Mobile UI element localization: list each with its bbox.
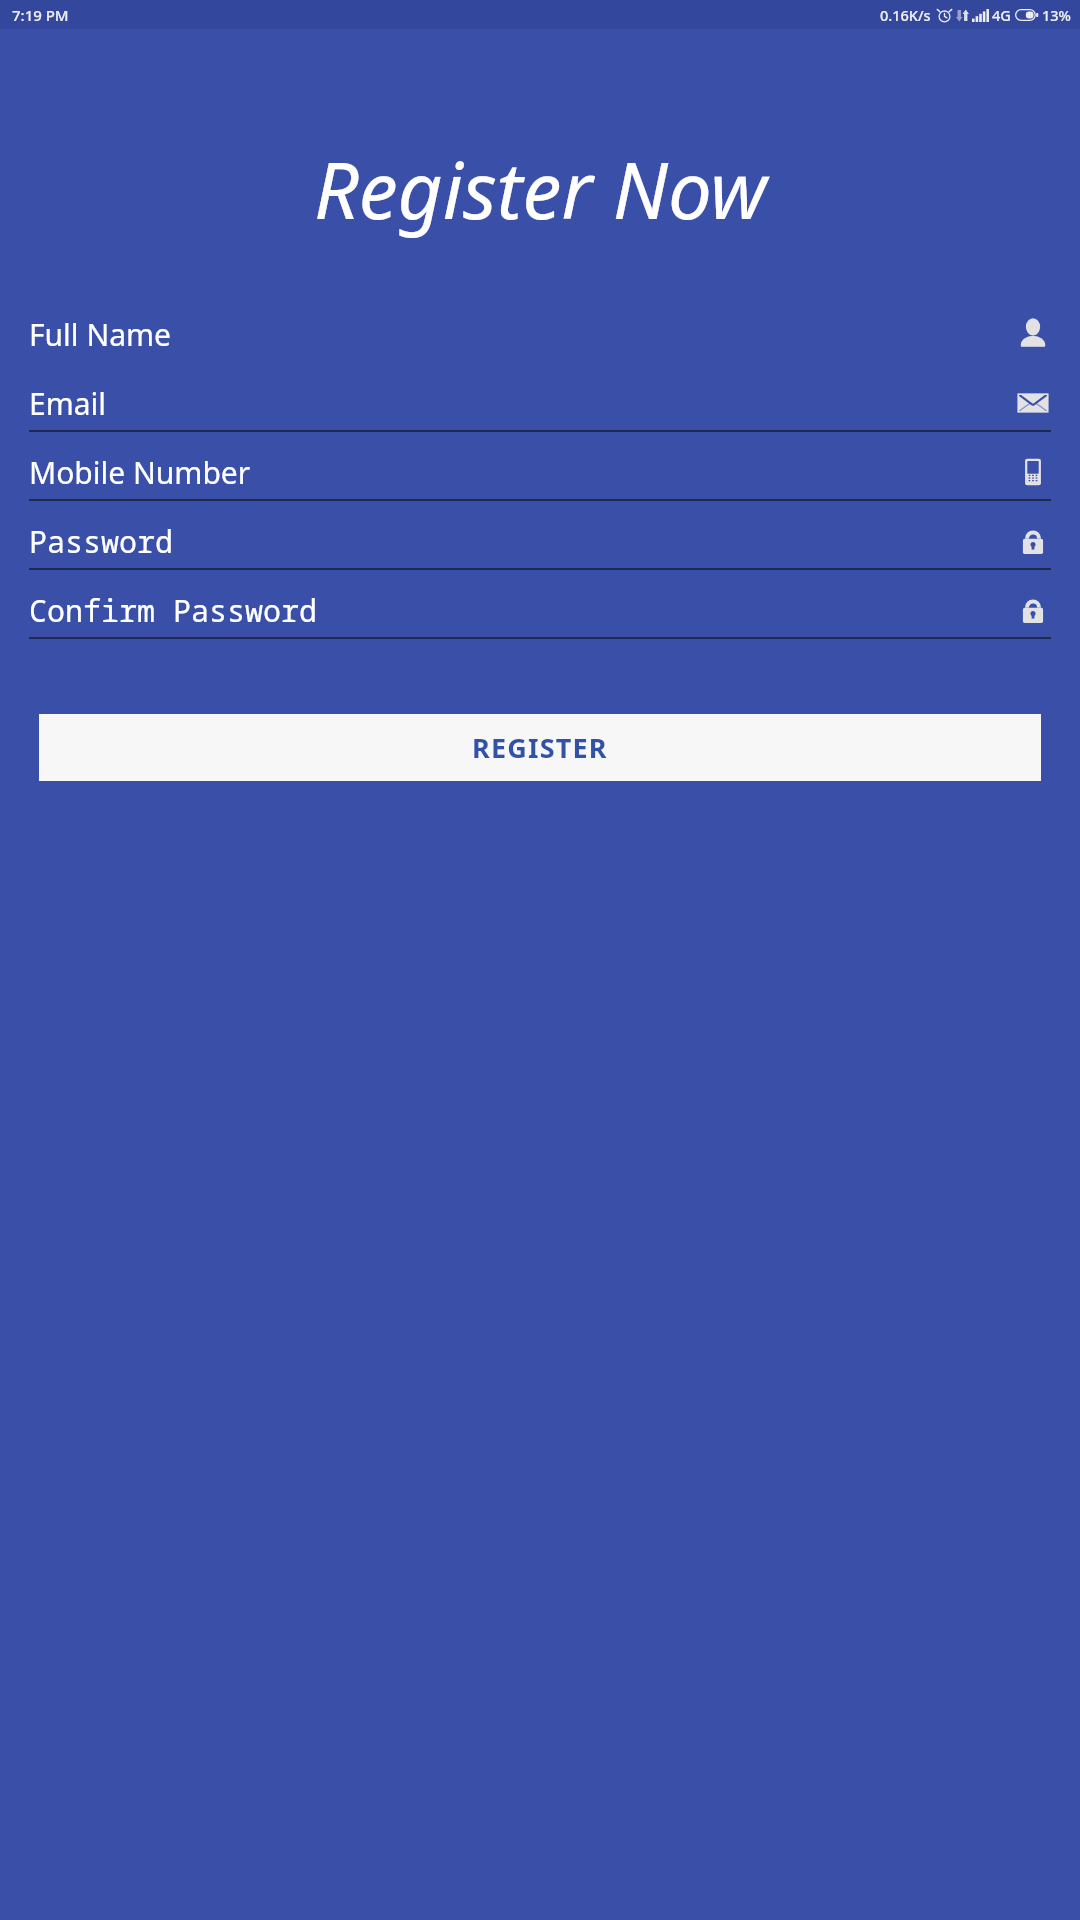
other: Email — [1015, 385, 1051, 421]
staticText: 7:19 PM — [12, 5, 69, 25]
staticText: Confirm Password — [29, 590, 1015, 631]
other: Mobile number — [1015, 454, 1051, 490]
staticText: REGISTER — [472, 729, 608, 766]
staticText: Full Name — [29, 314, 1015, 355]
staticText: Password — [29, 521, 1015, 562]
staticText: Register Now — [314, 136, 767, 242]
other: Password — [1015, 523, 1051, 559]
staticText: 4G — [992, 5, 1011, 25]
button[interactable]: REGISTER — [39, 714, 1041, 781]
other: Full name — [1015, 316, 1051, 352]
other: Password — [1015, 592, 1051, 628]
staticText: 13% — [1042, 5, 1071, 25]
staticText: Mobile Number — [29, 452, 1015, 493]
button[interactable]: Mobile Number — [29, 445, 1051, 514]
button[interactable]: Password — [29, 514, 1051, 583]
button[interactable]: Full Name — [29, 307, 1051, 376]
staticText: Email — [29, 383, 1015, 424]
button[interactable]: Confirm Password — [29, 583, 1051, 652]
button[interactable]: Email — [29, 376, 1051, 445]
staticText: 0.16K/s — [880, 5, 931, 25]
